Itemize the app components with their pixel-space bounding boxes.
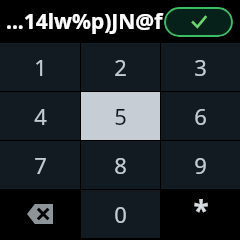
staticText: 0 xyxy=(114,199,127,229)
staticText: ...14lw%p)JN@f xyxy=(6,7,163,36)
button[interactable]: * xyxy=(161,190,240,238)
staticText: 8 xyxy=(114,150,127,180)
button[interactable]: 5 xyxy=(81,92,160,140)
staticText: 1 xyxy=(34,52,47,82)
staticText: 7 xyxy=(34,150,47,180)
button[interactable]: 4 xyxy=(0,92,80,140)
staticText: 3 xyxy=(194,52,207,82)
button[interactable]: 0 xyxy=(81,190,160,238)
staticText: 5 xyxy=(114,101,127,131)
button[interactable]: Backspace xyxy=(0,190,80,238)
button[interactable]: 3 xyxy=(161,43,240,91)
button[interactable]: 8 xyxy=(81,141,160,189)
button[interactable]: 2 xyxy=(81,43,160,91)
button[interactable]: 7 xyxy=(0,141,80,189)
button[interactable]: Confirm xyxy=(164,7,233,37)
button[interactable]: 9 xyxy=(161,141,240,189)
button[interactable]: 1 xyxy=(0,43,80,91)
button[interactable]: 6 xyxy=(161,92,240,140)
staticText: * xyxy=(193,191,209,229)
staticText: 4 xyxy=(34,101,47,131)
staticText: 2 xyxy=(114,52,127,82)
staticText: 9 xyxy=(194,150,207,180)
staticText: 6 xyxy=(194,101,207,131)
